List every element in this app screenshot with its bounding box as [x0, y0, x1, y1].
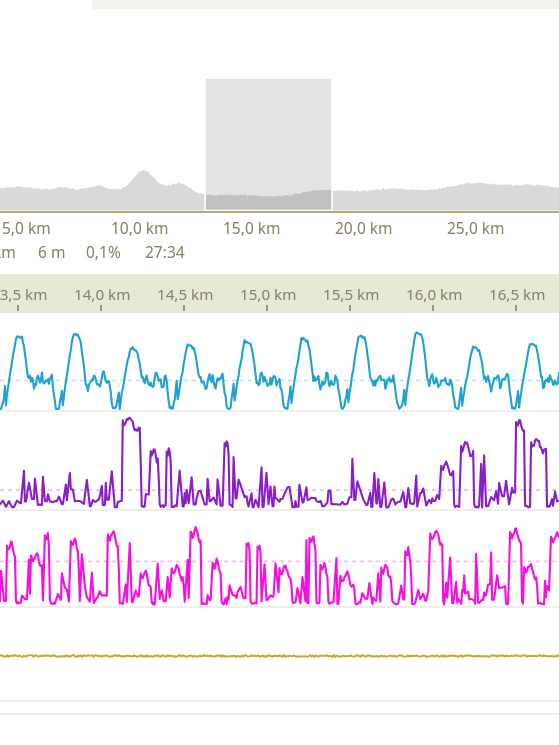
staticText: 25,0 km [447, 217, 505, 238]
staticText: 16,5 km [489, 284, 546, 305]
staticText: 14,5 km [157, 284, 214, 305]
staticText: 5,0 km [2, 217, 51, 238]
staticText: 6 m [38, 241, 66, 262]
staticText: 10,0 km [111, 217, 169, 238]
staticText: 13,5 km [0, 284, 48, 305]
staticText: km [0, 241, 16, 262]
staticText: 15,5 km [323, 284, 380, 305]
staticText: 16,0 km [406, 284, 463, 305]
staticText: 15,0 km [223, 217, 281, 238]
staticText: 20,0 km [335, 217, 393, 238]
staticText: 27:34 [145, 241, 185, 262]
staticText: 14,0 km [74, 284, 131, 305]
staticText: 0,1% [86, 241, 121, 262]
staticText: 15,0 km [240, 284, 297, 305]
